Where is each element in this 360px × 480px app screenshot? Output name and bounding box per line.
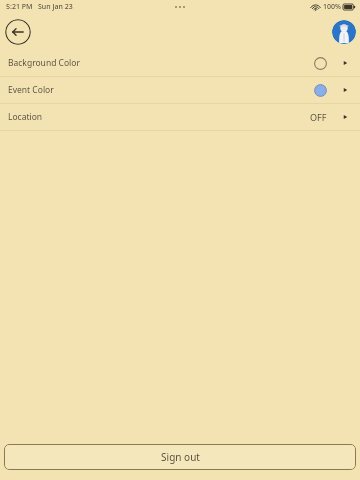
staticText: 100% bbox=[323, 2, 341, 12]
button[interactable]: Account bbox=[332, 20, 356, 44]
button[interactable]: Event Color bbox=[0, 77, 360, 103]
button[interactable]: Location bbox=[0, 104, 360, 130]
staticText: Event Color bbox=[8, 84, 54, 96]
staticText: Sign out bbox=[161, 450, 200, 464]
staticText: Sun Jan 23 bbox=[38, 2, 73, 12]
button[interactable]: Back bbox=[5, 19, 31, 45]
staticText: Background Color bbox=[8, 57, 80, 69]
button[interactable]: Background Color bbox=[0, 50, 360, 76]
staticText: 5:21 PM bbox=[6, 2, 33, 12]
button[interactable]: Sign out bbox=[4, 444, 356, 470]
staticText: OFF bbox=[310, 111, 327, 123]
staticText: Location bbox=[8, 111, 43, 123]
